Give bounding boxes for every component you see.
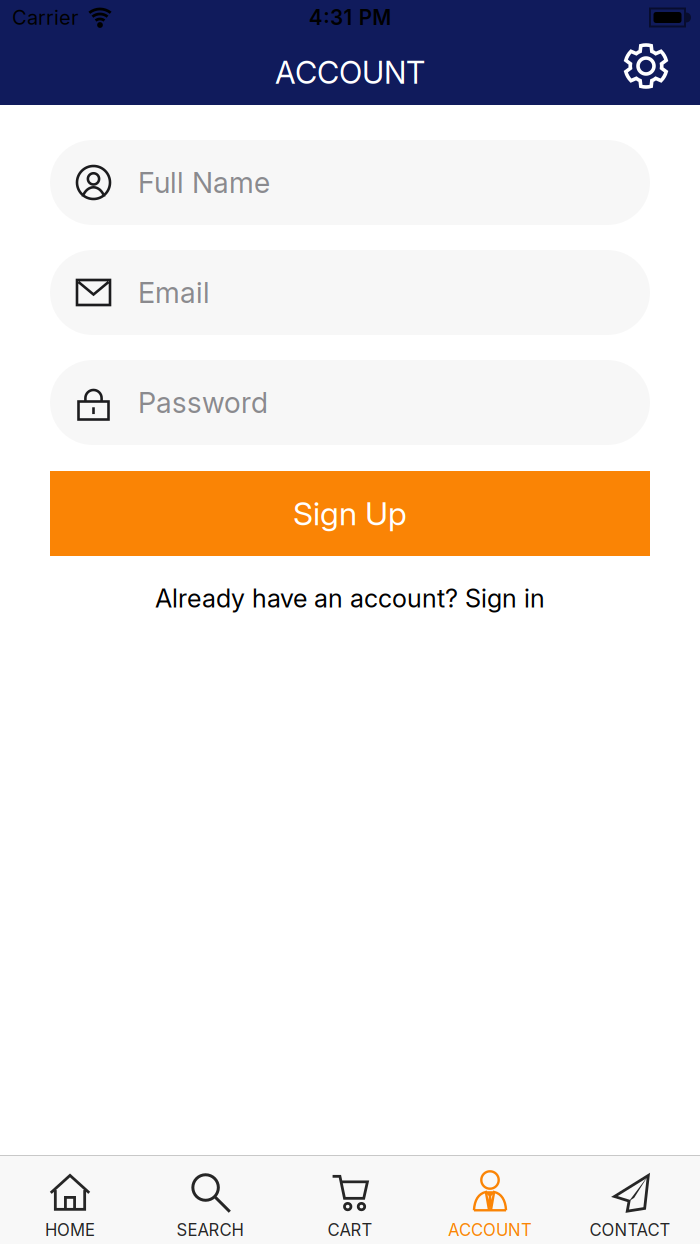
staticText: Password <box>138 385 268 420</box>
button[interactable]: SEARCH <box>140 1160 280 1240</box>
button[interactable]: CART <box>280 1160 420 1240</box>
button[interactable]: ACCOUNT <box>420 1160 560 1240</box>
button[interactable]: Full Name <box>50 140 650 225</box>
staticText: ACCOUNT <box>275 54 425 91</box>
staticText: Carrier <box>12 5 78 30</box>
staticText: ACCOUNT <box>448 1220 532 1240</box>
staticText: CONTACT <box>589 1220 670 1240</box>
staticText: Sign Up <box>293 494 407 533</box>
staticText: Email <box>138 275 210 310</box>
button[interactable]: Password <box>50 360 650 445</box>
button[interactable]: Already have an account? Sign in <box>155 583 545 614</box>
button[interactable]: Email <box>50 250 650 335</box>
staticText: Full Name <box>138 165 270 200</box>
staticText: 4:31 PM <box>309 5 391 30</box>
staticText: HOME <box>45 1220 95 1240</box>
button[interactable]: Sign Up <box>50 471 650 556</box>
staticText: Already have an account? Sign in <box>155 583 545 614</box>
staticText: SEARCH <box>176 1220 243 1240</box>
button[interactable]: HOME <box>0 1160 140 1240</box>
button[interactable]: Settings <box>625 45 700 100</box>
staticText: CART <box>327 1220 372 1240</box>
button[interactable]: CONTACT <box>560 1160 700 1240</box>
